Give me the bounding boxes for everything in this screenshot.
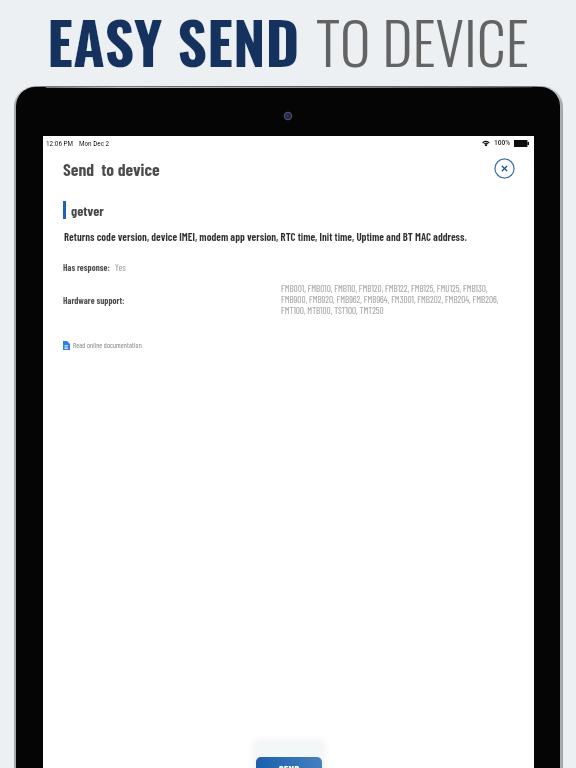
button[interactable]: SEND (256, 757, 322, 768)
staticText: getver (71, 202, 104, 219)
staticText: Has response: (63, 262, 110, 273)
button[interactable]: Close (494, 158, 515, 179)
staticText: Yes (115, 262, 126, 273)
staticText: TO DEVICE (316, 0, 529, 84)
staticText: SEND (279, 763, 300, 768)
staticText: Hardware support: (63, 295, 125, 306)
staticText: 12:06 PM (46, 140, 74, 147)
staticText: FMB001, FMB010, FMB110, FMB120, FMB122, … (281, 283, 499, 316)
staticText: Mon Dec 2 (79, 140, 110, 147)
staticText: 100% (494, 139, 511, 147)
staticText: EASY SEND (47, 0, 300, 84)
staticText: Read online documentation (73, 341, 142, 350)
staticText: Send to device (63, 158, 160, 179)
staticText: Returns code version, device IMEI, modem… (64, 230, 467, 243)
button[interactable]: Read online documentation (63, 341, 142, 350)
